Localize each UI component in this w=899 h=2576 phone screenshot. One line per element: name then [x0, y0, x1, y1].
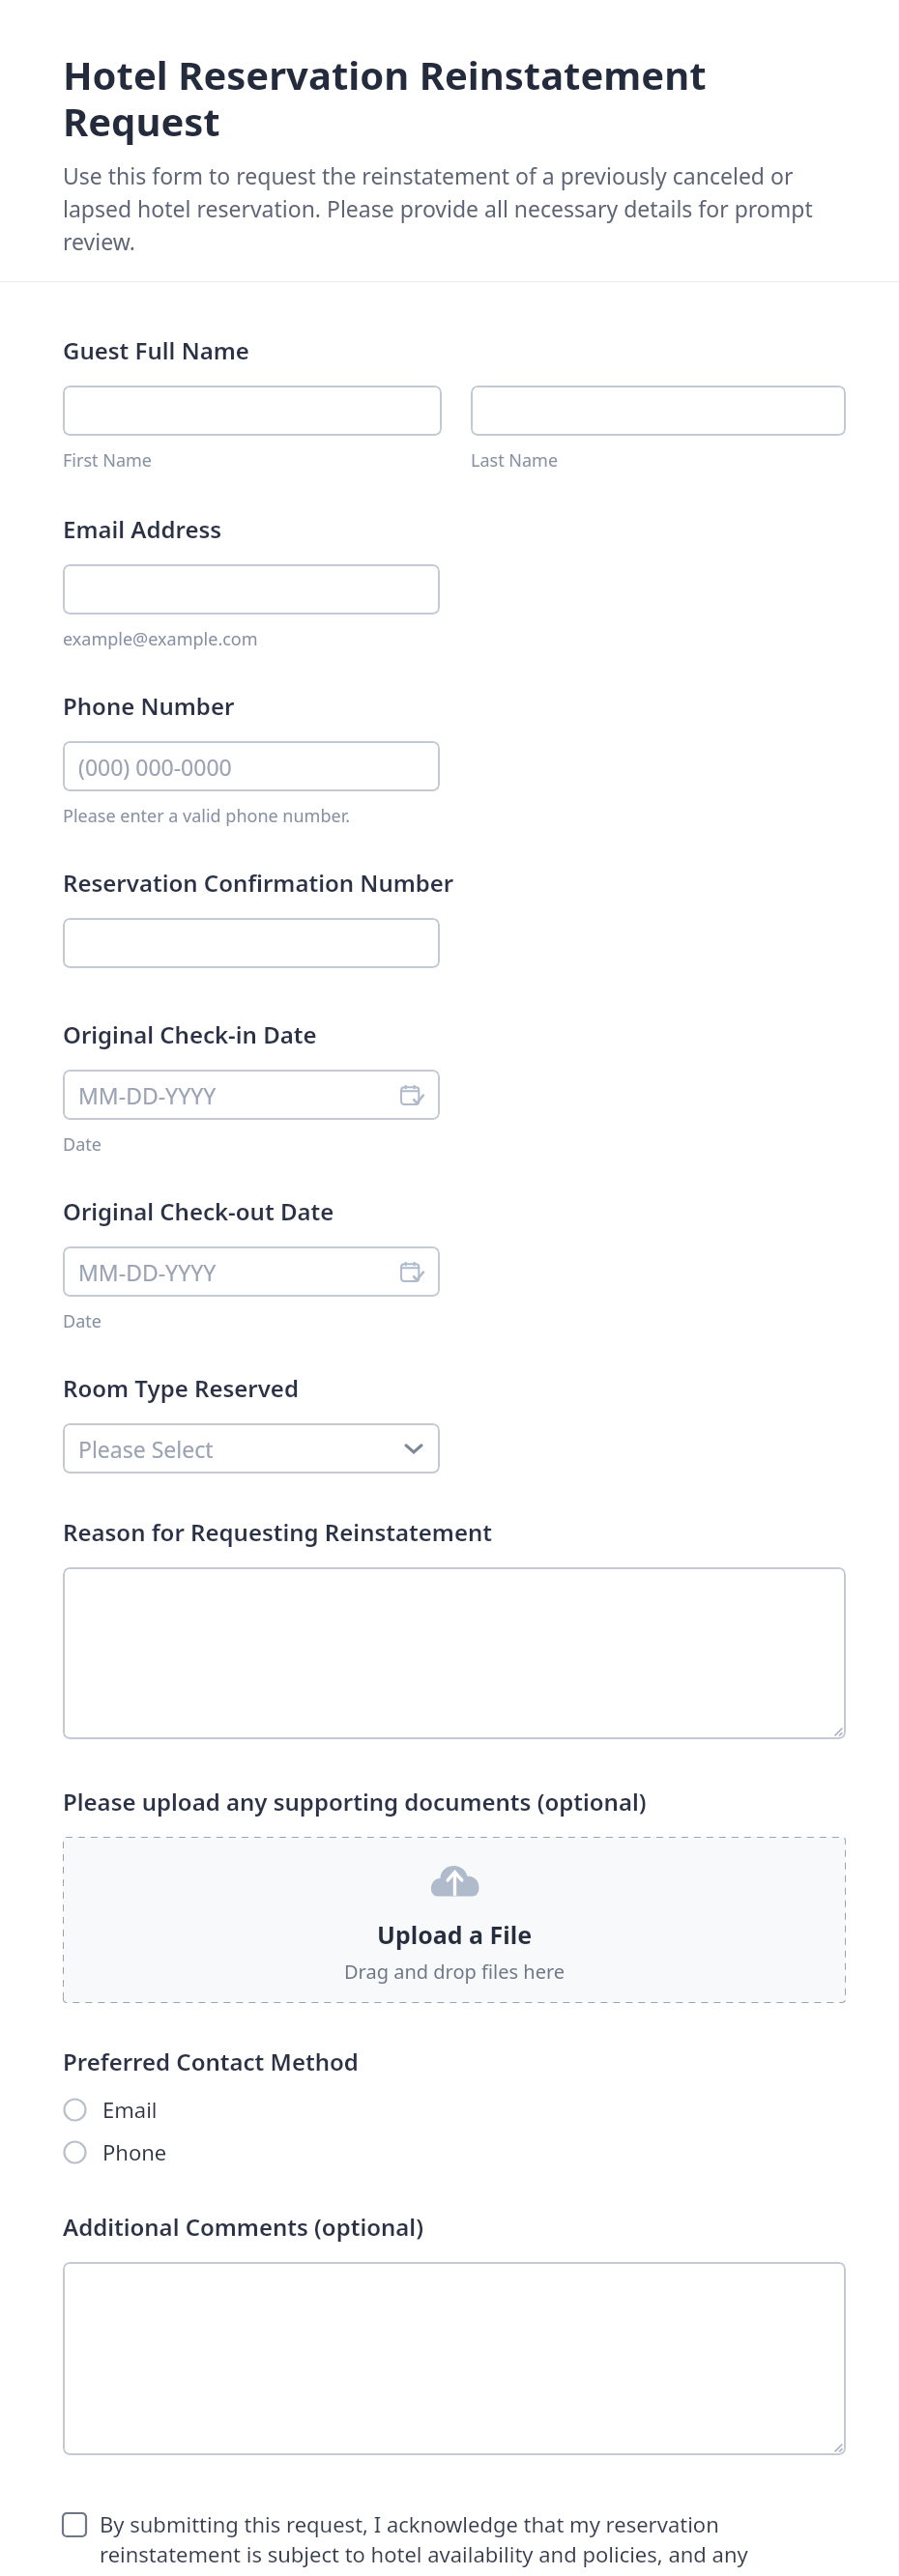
staticText: Hotel Reservation Reinstatement Request	[63, 48, 853, 147]
staticText: First Name	[63, 448, 152, 472]
staticText: example@example.com	[63, 627, 258, 651]
staticText: MM-DD-YYYY	[78, 1257, 217, 1287]
staticText: Guest Full Name	[63, 334, 249, 366]
button[interactable]: Upload a File	[63, 1837, 846, 2003]
button[interactable]	[63, 2262, 846, 2455]
button[interactable]: MM-DD-YYYY	[63, 1246, 440, 1297]
staticText: Date	[63, 1309, 101, 1333]
staticText: Preferred Contact Method	[63, 2046, 359, 2077]
button[interactable]: MM-DD-YYYY	[63, 1070, 440, 1120]
staticText: Please enter a valid phone number.	[63, 804, 351, 828]
staticText: Reservation Confirmation Number	[63, 867, 454, 899]
staticText: Please upload any supporting documents (…	[63, 1786, 647, 1818]
staticText: Please Select	[78, 1434, 214, 1464]
staticText: Reason for Requesting Reinstatement	[63, 1516, 492, 1548]
button[interactable]: Email	[63, 2091, 846, 2128]
staticText: Date	[63, 1132, 101, 1157]
button[interactable]: By submitting this request, I acknowledg…	[63, 2509, 846, 2576]
staticText: MM-DD-YYYY	[78, 1080, 217, 1110]
button[interactable]	[63, 1567, 846, 1739]
staticText: By submitting this request, I acknowledg…	[100, 2509, 846, 2576]
button[interactable]: (000) 000-0000	[63, 741, 440, 791]
button[interactable]	[63, 918, 440, 968]
staticText: Use this form to request the reinstateme…	[63, 160, 853, 256]
staticText: Email	[102, 2095, 158, 2124]
staticText: Room Type Reserved	[63, 1372, 299, 1404]
staticText: Drag and drop files here	[344, 1959, 565, 1985]
staticText: Original Check-in Date	[63, 1018, 317, 1050]
staticText: Email Address	[63, 513, 222, 545]
button[interactable]: Please Select	[63, 1423, 440, 1474]
staticText: Last Name	[471, 448, 559, 472]
staticText: Additional Comments (optional)	[63, 2211, 423, 2243]
button[interactable]	[471, 386, 846, 436]
button[interactable]	[63, 564, 440, 615]
staticText: Original Check-out Date	[63, 1195, 334, 1227]
staticText: Phone Number	[63, 690, 235, 722]
button[interactable]: Phone	[63, 2133, 846, 2170]
staticText: Upload a File	[377, 1918, 533, 1951]
staticText: (000) 000-0000	[78, 752, 232, 782]
button[interactable]	[63, 386, 442, 436]
staticText: Phone	[102, 2137, 167, 2166]
